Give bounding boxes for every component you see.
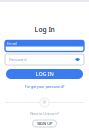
button[interactable]: Show password [75, 57, 80, 61]
button[interactable]: Forgot your password? [24, 84, 64, 89]
button[interactable]: SIGN UP [32, 120, 56, 127]
button[interactable]: LOG IN [6, 69, 83, 79]
staticText: Password [9, 57, 26, 62]
staticText: Log In [34, 25, 54, 34]
staticText: OR [42, 101, 46, 104]
staticText: Forgot your password? [24, 84, 64, 89]
staticText: SIGN UP [37, 121, 52, 126]
staticText: LOG IN [35, 70, 53, 78]
staticText: Email [7, 41, 17, 46]
staticText: New to Unicorn? [30, 111, 59, 116]
